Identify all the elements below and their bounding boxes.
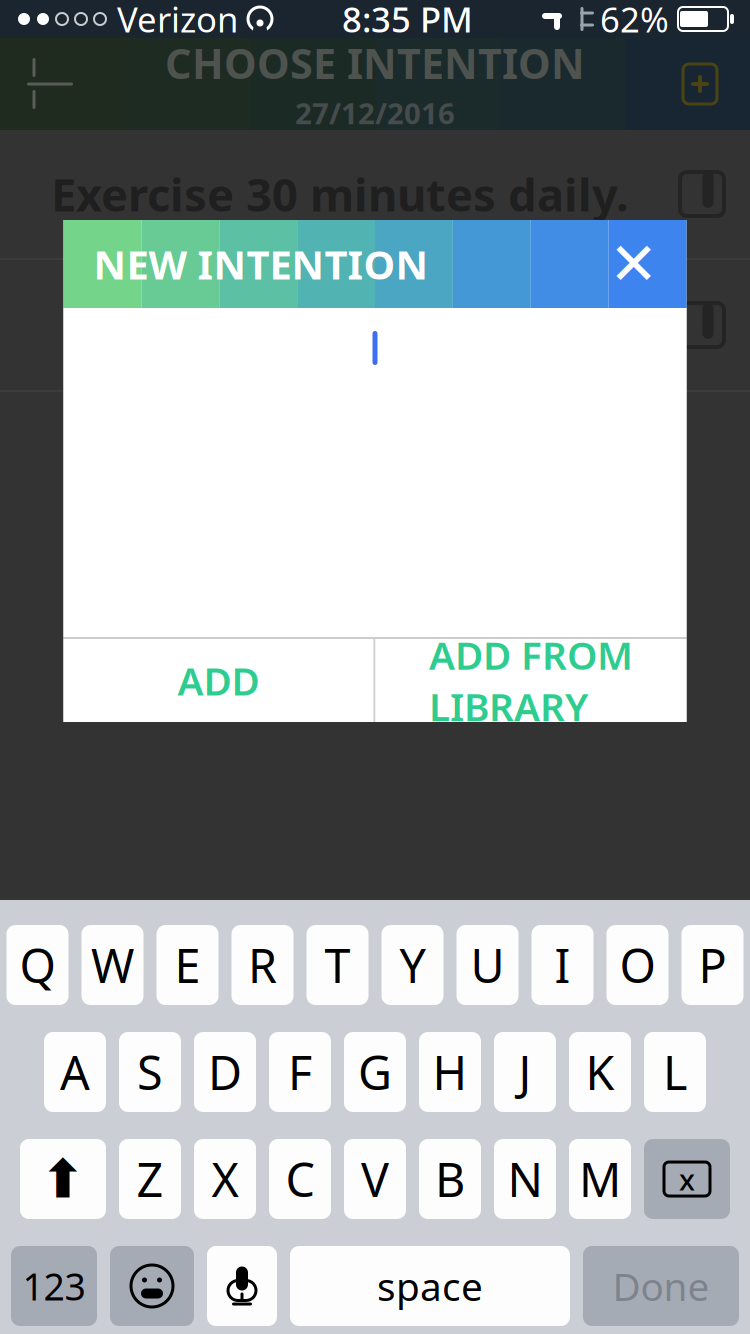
staticText: 62% — [600, 0, 669, 42]
staticText: 8:35 PM — [342, 0, 473, 42]
staticText: Exercise 30 minutes daily. — [51, 164, 629, 224]
staticText: L — [663, 1041, 687, 1103]
button[interactable]: S — [119, 1032, 181, 1112]
button[interactable]: B — [419, 1139, 481, 1219]
button[interactable]: V — [344, 1139, 406, 1219]
button[interactable]: R — [231, 925, 293, 1005]
staticText: U — [470, 934, 504, 996]
button[interactable]: C — [269, 1139, 331, 1219]
button[interactable]: T — [306, 925, 368, 1005]
button[interactable]: 123 — [11, 1246, 97, 1326]
button[interactable]: Back — [0, 38, 100, 130]
staticText: NEW INTENTION — [93, 237, 428, 290]
button[interactable]: P — [681, 925, 743, 1005]
staticText: x — [679, 1159, 695, 1198]
staticText: N — [507, 1148, 542, 1210]
button[interactable]: Close — [596, 227, 670, 301]
button[interactable]: Emoji — [110, 1246, 194, 1326]
button[interactable]: Done — [583, 1246, 739, 1326]
button[interactable]: ADD FROM LIBRARY — [375, 639, 686, 722]
button[interactable]: Shift — [20, 1139, 106, 1219]
staticText: ⬆ — [40, 1149, 85, 1209]
staticText: X — [211, 1148, 238, 1210]
button[interactable]: Z — [119, 1139, 181, 1219]
staticText: Y — [399, 934, 425, 996]
staticText: C — [285, 1148, 314, 1210]
staticText: 27/12/2016 — [295, 93, 455, 132]
button[interactable]: ADD — [63, 639, 373, 722]
staticText: space — [377, 1260, 483, 1312]
button[interactable]: N — [494, 1139, 556, 1219]
staticText: P — [698, 934, 726, 996]
button[interactable]: M — [569, 1139, 631, 1219]
staticText: D — [208, 1041, 242, 1103]
staticText: O — [619, 934, 655, 996]
staticText: G — [358, 1041, 392, 1103]
staticText: B — [435, 1148, 465, 1210]
staticText: F — [288, 1041, 312, 1103]
button[interactable]: I — [531, 925, 593, 1005]
staticText: V — [361, 1148, 389, 1210]
button[interactable]: W — [81, 925, 143, 1005]
staticText: E — [174, 934, 200, 996]
button[interactable]: E — [156, 925, 218, 1005]
button[interactable]: Add intention — [650, 38, 750, 130]
staticText: Done — [612, 1260, 709, 1312]
button[interactable]: Delete — [644, 1139, 730, 1219]
staticText: CHOOSE INTENTION — [165, 36, 585, 90]
staticText: R — [248, 934, 277, 996]
button[interactable]: A — [44, 1032, 106, 1112]
staticText: Verizon — [117, 0, 238, 42]
button[interactable]: J — [494, 1032, 556, 1112]
button[interactable]: Dictation — [207, 1246, 277, 1326]
button[interactable]: L — [644, 1032, 706, 1112]
button[interactable]: H — [419, 1032, 481, 1112]
button[interactable]: D — [194, 1032, 256, 1112]
button[interactable]: X — [194, 1139, 256, 1219]
staticText: J — [518, 1041, 531, 1103]
staticText: ✕ — [609, 231, 658, 297]
button[interactable]: U — [456, 925, 518, 1005]
staticText: T — [324, 934, 350, 996]
staticText: Q — [19, 934, 55, 996]
staticText: A — [60, 1041, 90, 1103]
staticText: Z — [136, 1148, 163, 1210]
staticText: W — [91, 934, 134, 996]
staticText: M — [579, 1148, 621, 1210]
staticText: ADD — [177, 655, 259, 706]
button[interactable]: space — [290, 1246, 570, 1326]
staticText: H — [432, 1041, 467, 1103]
button[interactable]: G — [344, 1032, 406, 1112]
staticText: 123 — [22, 1261, 85, 1311]
staticText: ADD FROM LIBRARY — [429, 629, 633, 732]
staticText: K — [585, 1041, 614, 1103]
button[interactable]: K — [569, 1032, 631, 1112]
button[interactable]: O — [606, 925, 668, 1005]
button[interactable]: Q — [6, 925, 68, 1005]
button[interactable]: F — [269, 1032, 331, 1112]
button[interactable]: Y — [381, 925, 443, 1005]
staticText: S — [137, 1041, 163, 1103]
staticText: I — [554, 934, 570, 996]
